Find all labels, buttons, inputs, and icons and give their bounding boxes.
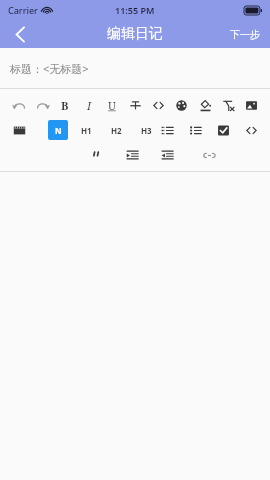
button[interactable]: Code block <box>242 121 260 139</box>
button[interactable]: Insert link <box>200 146 218 164</box>
staticText: I <box>87 98 92 113</box>
button[interactable]: Code <box>149 96 167 114</box>
button[interactable]: H1 <box>76 120 96 140</box>
staticText: B <box>61 98 69 113</box>
button[interactable]: Outdent <box>158 146 176 164</box>
button[interactable]: 标题：<无标题> <box>0 48 270 88</box>
button[interactable]: Text color <box>172 96 190 114</box>
staticText: 下一步 <box>230 28 260 41</box>
staticText: H3 <box>141 125 152 136</box>
button[interactable]: Clear formatting <box>219 96 237 114</box>
button[interactable]: Back <box>0 20 40 48</box>
button[interactable]: Insert image <box>242 96 260 114</box>
button[interactable]: Checklist <box>214 121 232 139</box>
button[interactable]: Italic <box>80 96 98 114</box>
button[interactable]: 下一步 <box>220 20 270 48</box>
button[interactable]: Indent <box>123 146 141 164</box>
button[interactable]: H3 <box>136 120 156 140</box>
button[interactable]: Underline <box>103 96 121 114</box>
button[interactable]: Undo <box>10 96 28 114</box>
staticText: H2 <box>111 125 122 136</box>
staticText: 11:55 PM <box>115 4 155 16</box>
staticText: U <box>108 98 116 113</box>
staticText: Carrier <box>8 4 38 16</box>
button[interactable]: Bold <box>56 96 74 114</box>
staticText: N <box>55 125 62 136</box>
button[interactable]: Redo <box>33 96 51 114</box>
button[interactable]: Insert video <box>10 121 28 139</box>
button[interactable]: H2 <box>106 120 126 140</box>
button[interactable]: Numbered list <box>158 121 176 139</box>
staticText: 编辑日记 <box>107 25 163 43</box>
button[interactable]: Bulleted list <box>186 121 204 139</box>
button[interactable]: Highlight color <box>196 96 214 114</box>
button[interactable]: Quote <box>88 146 106 164</box>
button[interactable]: Normal text <box>48 120 68 140</box>
staticText: H1 <box>81 125 92 136</box>
staticText: 标题：<无标题> <box>10 61 89 76</box>
button[interactable]: Strikethrough <box>126 96 144 114</box>
